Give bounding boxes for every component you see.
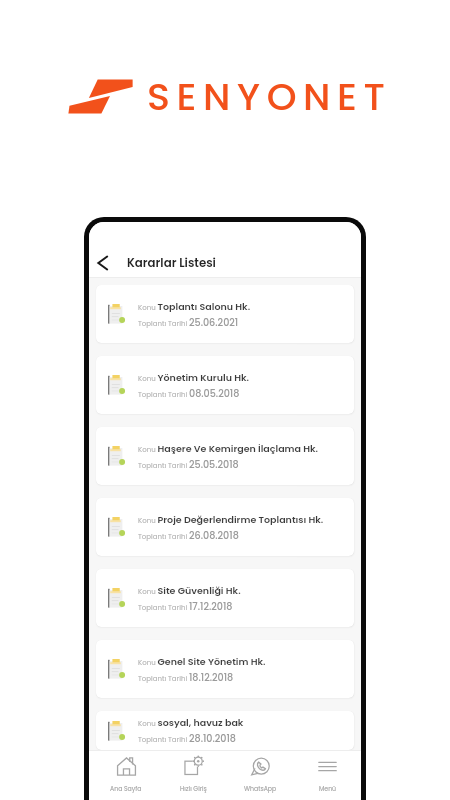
staticText: Konu Toplantı Salonu Hk. xyxy=(138,300,251,313)
staticText: Konu Genel Site Yönetim Hk. xyxy=(138,655,266,668)
button[interactable]: WhatsApp xyxy=(227,757,294,793)
staticText: SENYONET xyxy=(147,70,392,123)
button[interactable]: Konu Proje Değerlendirme Toplantısı Hk. xyxy=(96,498,354,556)
button[interactable]: Hızlı Giriş xyxy=(160,757,227,793)
button[interactable]: Menü xyxy=(294,757,361,793)
button[interactable]: Konu sosyal, havuz bak xyxy=(96,711,354,750)
staticText: Toplantı Tarihi 17.12.2018 xyxy=(138,600,233,613)
staticText: Konu Site Güvenliği Hk. xyxy=(138,584,241,597)
staticText: Toplantı Tarihi 26.08.2018 xyxy=(138,529,239,542)
staticText: Hızlı Giriş xyxy=(180,784,207,793)
staticText: Konu Yönetim Kurulu Hk. xyxy=(138,371,249,384)
staticText: Konu sosyal, havuz bak xyxy=(138,716,244,729)
button[interactable]: Back xyxy=(90,250,116,276)
button[interactable]: Ana Sayfa xyxy=(92,757,160,793)
button[interactable]: Konu Yönetim Kurulu Hk. xyxy=(96,356,354,414)
staticText: Konu Proje Değerlendirme Toplantısı Hk. xyxy=(138,513,324,526)
staticText: Toplantı Tarihi 18.12.2018 xyxy=(138,671,234,684)
button[interactable]: Konu Haşere Ve Kemirgen İlaçlama Hk. xyxy=(96,427,354,485)
staticText: Toplantı Tarihi 08.05.2018 xyxy=(138,387,240,400)
staticText: WhatsApp xyxy=(244,784,277,793)
staticText: Toplantı Tarihi 25.06.2021 xyxy=(138,316,239,329)
staticText: Toplantı Tarihi 28.10.2018 xyxy=(138,732,236,745)
button[interactable]: Konu Toplantı Salonu Hk. xyxy=(96,285,354,343)
button[interactable]: Konu Genel Site Yönetim Hk. xyxy=(96,640,354,698)
staticText: Menü xyxy=(319,784,337,793)
button[interactable]: Konu Site Güvenliği Hk. xyxy=(96,569,354,627)
staticText: Kararlar Listesi xyxy=(127,255,216,272)
staticText: Toplantı Tarihi 25.05.2018 xyxy=(138,458,239,471)
staticText: Ana Sayfa xyxy=(110,784,142,793)
staticText: Konu Haşere Ve Kemirgen İlaçlama Hk. xyxy=(138,442,319,455)
